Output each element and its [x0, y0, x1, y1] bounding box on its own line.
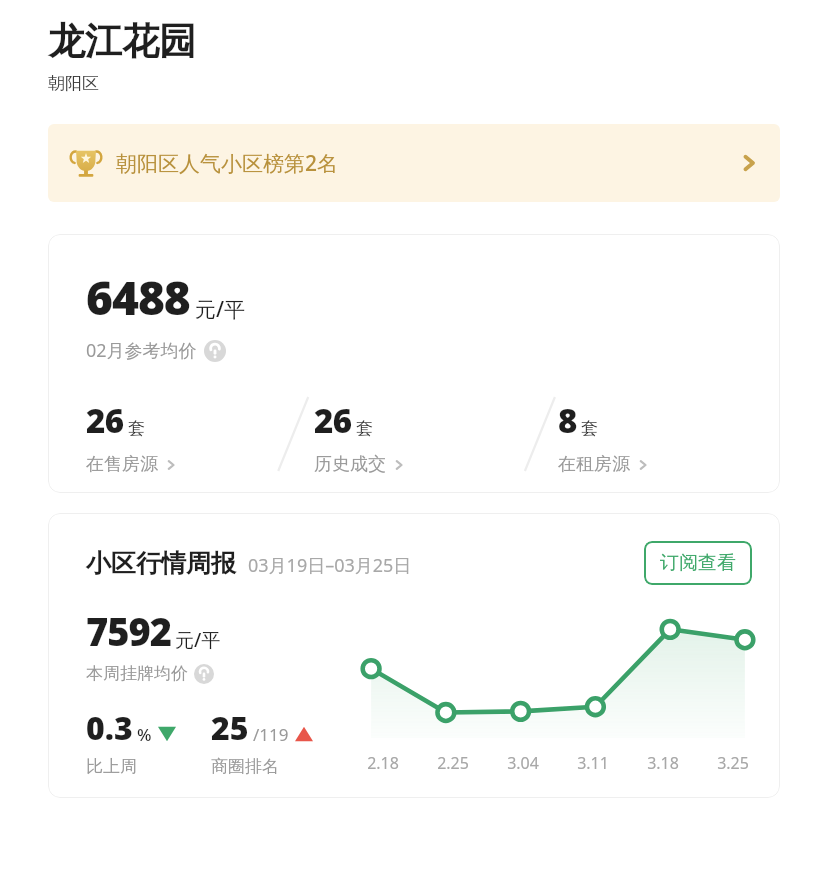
staticText: 在售房源: [86, 453, 158, 476]
staticText: 比上周: [86, 756, 137, 777]
button[interactable]: 26: [48, 387, 292, 487]
staticText: 25: [211, 706, 249, 750]
staticText: 订阅查看: [660, 551, 736, 575]
staticText: 历史成交: [314, 453, 386, 476]
staticText: 6488: [86, 266, 190, 329]
staticText: 3.11: [577, 752, 609, 774]
staticText: 02月参考均价: [86, 338, 197, 363]
staticText: 商圈排名: [211, 756, 279, 777]
staticText: 0.3: [86, 706, 133, 750]
staticText: 3.04: [507, 752, 539, 774]
staticText: 8: [558, 398, 577, 443]
staticText: 26: [86, 398, 124, 443]
staticText: 3.18: [647, 752, 679, 774]
staticText: 26: [314, 398, 352, 443]
staticText: 2.18: [367, 752, 399, 774]
staticText: %: [137, 723, 152, 746]
staticText: 元/平: [195, 295, 246, 324]
staticText: 套: [356, 418, 373, 439]
staticText: 03月19日–03月25日: [248, 553, 412, 578]
button[interactable]: 朝阳区人气小区榜第2名: [48, 124, 780, 202]
staticText: 元/平: [175, 627, 221, 653]
staticText: 本周挂牌均价: [86, 663, 188, 684]
staticText: 套: [581, 418, 598, 439]
button[interactable]: 26: [292, 387, 536, 487]
staticText: 2.25: [437, 752, 469, 774]
staticText: 龙江花园: [48, 18, 196, 65]
button[interactable]: 订阅查看: [644, 541, 752, 585]
staticText: 3.25: [717, 752, 749, 774]
staticText: 小区行情周报: [86, 548, 236, 579]
staticText: 套: [128, 418, 145, 439]
button[interactable]: 8: [536, 387, 780, 487]
staticText: 7592: [86, 605, 172, 657]
staticText: 在租房源: [558, 453, 630, 476]
staticText: 朝阳区人气小区榜第2名: [116, 149, 339, 178]
staticText: /119: [253, 723, 289, 746]
staticText: 朝阳区: [48, 73, 99, 94]
